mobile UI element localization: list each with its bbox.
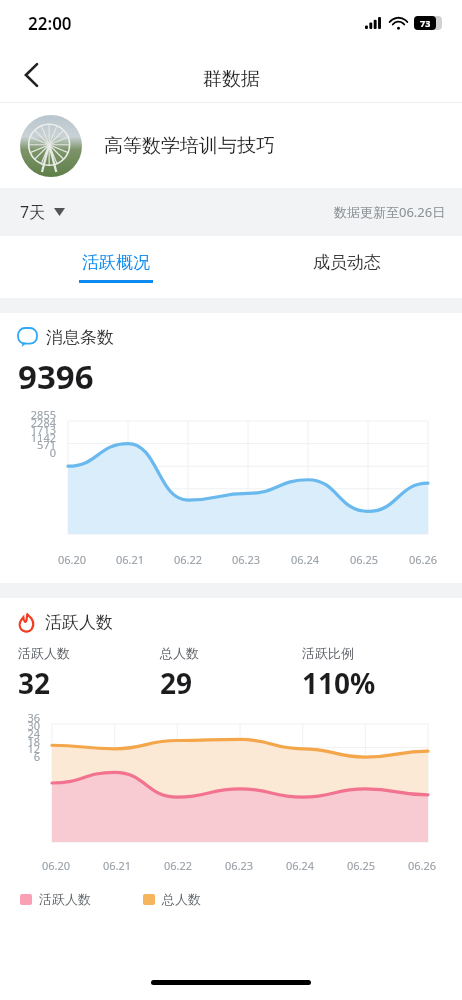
- staticText: 06.22: [174, 552, 203, 567]
- button[interactable]: 成员动态: [231, 236, 462, 298]
- button[interactable]: 7天: [16, 195, 69, 229]
- staticText: 22:00: [28, 12, 72, 35]
- staticText: 06.25: [347, 858, 376, 873]
- staticText: 06.25: [350, 552, 379, 567]
- staticText: 06.20: [58, 552, 87, 567]
- staticText: 06.22: [164, 858, 193, 873]
- staticText: 06.21: [103, 858, 132, 873]
- staticText: 高等数学培训与技巧: [104, 134, 275, 158]
- staticText: 1142: [0, 430, 56, 445]
- staticText: 数据更新至06.26日: [334, 203, 446, 221]
- staticText: 06.23: [225, 858, 254, 873]
- staticText: 32: [18, 664, 51, 702]
- staticText: 06.20: [42, 858, 71, 873]
- staticText: 总人数: [160, 645, 199, 661]
- staticText: 06.24: [291, 552, 320, 567]
- staticText: 36: [0, 710, 40, 725]
- staticText: 2284: [0, 415, 56, 430]
- staticText: 06.26: [408, 858, 437, 873]
- staticText: 7天: [20, 201, 46, 223]
- button[interactable]: 高等数学培训与技巧: [0, 103, 462, 188]
- staticText: 活跃人数: [39, 891, 91, 907]
- staticText: 9396: [18, 354, 94, 399]
- staticText: 消息条数: [46, 327, 114, 348]
- staticText: 30: [0, 718, 40, 733]
- button[interactable]: Back: [10, 53, 54, 97]
- staticText: 活跃人数: [45, 612, 113, 633]
- staticText: 110%: [302, 664, 376, 702]
- staticText: 571: [0, 437, 56, 452]
- staticText: 1713: [0, 422, 56, 437]
- staticText: 2855: [0, 407, 56, 422]
- staticText: 18: [0, 734, 40, 749]
- staticText: 06.23: [232, 552, 261, 567]
- staticText: 总人数: [162, 891, 201, 907]
- staticText: 0: [0, 445, 56, 460]
- staticText: 73: [420, 17, 431, 29]
- staticText: 06.24: [286, 858, 315, 873]
- staticText: 29: [160, 664, 193, 702]
- staticText: 群数据: [203, 67, 260, 91]
- staticText: 12: [0, 741, 40, 756]
- staticText: 成员动态: [313, 252, 381, 273]
- staticText: 6: [0, 749, 40, 764]
- staticText: 24: [0, 726, 40, 741]
- staticText: 活跃概况: [82, 252, 150, 273]
- button[interactable]: 活跃概况: [0, 236, 231, 298]
- staticText: 06.26: [409, 552, 438, 567]
- staticText: 06.21: [116, 552, 145, 567]
- staticText: 活跃比例: [302, 645, 354, 661]
- staticText: 活跃人数: [18, 645, 70, 661]
